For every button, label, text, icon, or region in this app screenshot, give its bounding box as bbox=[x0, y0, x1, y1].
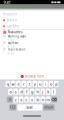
staticText: Favourites bbox=[8, 30, 22, 34]
staticText: Subject bbox=[7, 18, 17, 22]
button[interactable]: x bbox=[19, 96, 23, 103]
button[interactable]: w bbox=[11, 81, 15, 87]
staticText: 7:00 bbox=[8, 39, 15, 42]
staticText: r bbox=[23, 81, 25, 87]
staticText: space bbox=[26, 106, 33, 109]
button[interactable]: m bbox=[46, 96, 50, 103]
button[interactable]: ⇧ bbox=[7, 96, 13, 103]
staticText: n bbox=[42, 97, 44, 102]
button[interactable]: e bbox=[16, 81, 21, 87]
staticText: ⌫ bbox=[51, 97, 57, 102]
button[interactable]: b bbox=[35, 96, 40, 103]
button[interactable]: n bbox=[40, 96, 45, 103]
button[interactable]: a bbox=[8, 89, 13, 95]
button[interactable]: p bbox=[54, 81, 58, 87]
staticText: c bbox=[26, 97, 28, 102]
staticText: b bbox=[36, 97, 38, 102]
button[interactable]: k bbox=[46, 89, 50, 95]
staticText: f bbox=[26, 89, 27, 94]
button[interactable]: Recipient bbox=[0, 11, 64, 17]
button[interactable]: Remove item bbox=[0, 73, 64, 79]
staticText: 8:15 bbox=[8, 45, 15, 49]
staticText: 9:41 bbox=[3, 0, 10, 5]
staticText: j bbox=[42, 89, 43, 94]
staticText: x bbox=[20, 97, 22, 102]
staticText: s bbox=[15, 89, 17, 94]
button[interactable]: Category bbox=[0, 23, 64, 29]
button[interactable]: Focus session bbox=[0, 48, 64, 54]
staticText: m bbox=[46, 97, 50, 102]
button[interactable]: 123 bbox=[9, 104, 16, 110]
staticText: e bbox=[17, 81, 19, 87]
staticText: Morning walk bbox=[8, 35, 26, 38]
button[interactable]: l bbox=[51, 89, 56, 95]
button[interactable]: Morning walk bbox=[0, 35, 64, 41]
staticText: i bbox=[45, 81, 46, 87]
staticText: v bbox=[31, 97, 33, 102]
button[interactable]: return bbox=[43, 104, 55, 110]
staticText: return bbox=[44, 106, 53, 109]
staticText: Focus session bbox=[8, 48, 26, 51]
staticText: h bbox=[36, 89, 38, 94]
button[interactable]: o bbox=[49, 81, 53, 87]
button[interactable]: z bbox=[14, 96, 18, 103]
staticText: p bbox=[55, 81, 57, 87]
staticText: g bbox=[31, 89, 33, 94]
staticText: k bbox=[47, 89, 49, 94]
button[interactable]: i bbox=[43, 81, 48, 87]
staticText: 9:30 bbox=[8, 52, 15, 55]
button[interactable]: s bbox=[13, 89, 18, 95]
button[interactable]: r bbox=[22, 81, 26, 87]
button[interactable]: Subject bbox=[0, 17, 64, 23]
button[interactable]: j bbox=[40, 89, 45, 95]
button[interactable]: ⌫ bbox=[51, 96, 57, 103]
button[interactable]: space bbox=[17, 104, 42, 110]
staticText: Remove item bbox=[25, 75, 43, 78]
staticText: d bbox=[20, 89, 22, 94]
staticText: u bbox=[39, 81, 41, 87]
button[interactable]: u bbox=[38, 81, 42, 87]
staticText: y bbox=[34, 81, 36, 87]
staticText: o bbox=[50, 81, 52, 87]
staticText: ⇧ bbox=[8, 97, 11, 102]
staticText: l bbox=[53, 89, 54, 94]
staticText: Espresso bbox=[8, 41, 19, 45]
staticText: a bbox=[9, 89, 11, 94]
button[interactable]: f bbox=[24, 89, 29, 95]
button[interactable]: c bbox=[24, 96, 29, 103]
staticText: Category bbox=[7, 24, 19, 28]
button[interactable]: v bbox=[30, 96, 34, 103]
button[interactable]: q bbox=[5, 81, 10, 87]
staticText: Recipient bbox=[3, 12, 17, 16]
button[interactable]: Espresso bbox=[0, 41, 64, 48]
button[interactable]: d bbox=[19, 89, 23, 95]
button[interactable]: g bbox=[30, 89, 34, 95]
staticText: t bbox=[29, 81, 30, 87]
staticText: w bbox=[12, 81, 15, 87]
button[interactable]: t bbox=[27, 81, 32, 87]
staticText: z bbox=[15, 97, 17, 102]
button[interactable]: h bbox=[35, 89, 40, 95]
button[interactable]: y bbox=[32, 81, 37, 87]
staticText: q bbox=[7, 81, 9, 87]
staticText: 123 bbox=[10, 106, 16, 109]
